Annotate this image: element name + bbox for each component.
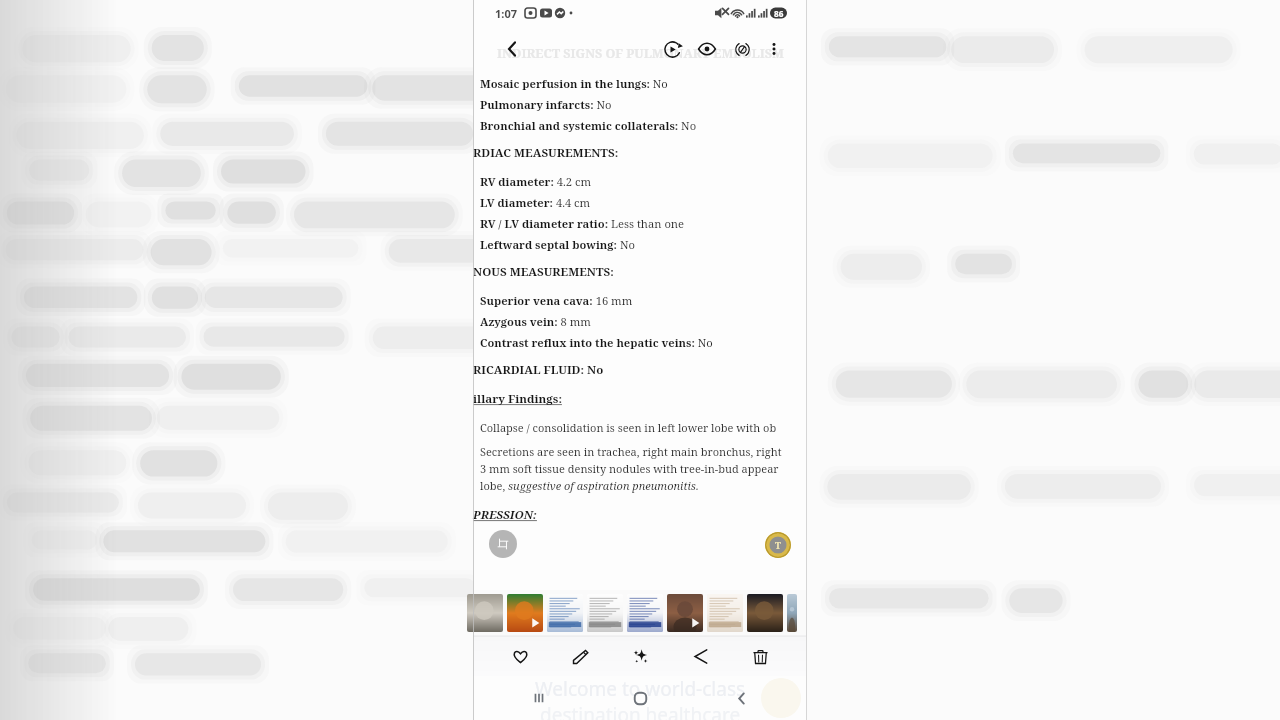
staticText: 3 mm soft tissue density nodules with tr… bbox=[480, 461, 779, 476]
staticText: lobe, suggestive of aspiration pneumonit… bbox=[480, 478, 699, 493]
staticText: LV diameter: 4.4 cm bbox=[480, 195, 591, 210]
button[interactable] bbox=[787, 594, 797, 632]
staticText: T bbox=[775, 539, 781, 551]
staticText: Superior vena cava: 16 mm bbox=[480, 293, 633, 308]
staticText: illary Findings: bbox=[473, 391, 562, 407]
button[interactable]: Lens bbox=[726, 33, 758, 65]
staticText: RV diameter: 4.2 cm bbox=[480, 174, 592, 189]
button[interactable]: Back bbox=[495, 32, 529, 66]
button[interactable]: Crop bbox=[489, 530, 517, 558]
staticText: destination healthcare bbox=[540, 702, 741, 720]
button[interactable]: Delete bbox=[741, 637, 779, 675]
button[interactable]: Back bbox=[721, 678, 761, 718]
staticText: Mosaic perfusion in the lungs: No bbox=[480, 76, 668, 91]
button[interactable] bbox=[747, 594, 783, 632]
button[interactable] bbox=[467, 594, 503, 632]
staticText: RICARDIAL FLUID: No bbox=[473, 362, 604, 378]
button[interactable]: Favorite bbox=[501, 637, 539, 675]
staticText: Secretions are seen in trachea, right ma… bbox=[480, 444, 782, 459]
staticText: Bronchial and systemic collaterals: No bbox=[480, 118, 697, 133]
staticText: Welcome to world-class bbox=[535, 676, 746, 702]
staticText: RV / LV diameter ratio: Less than one bbox=[480, 216, 685, 231]
button[interactable] bbox=[587, 594, 623, 632]
staticText: Leftward septal bowing: No bbox=[480, 237, 635, 252]
button[interactable]: Enhance with AI bbox=[621, 637, 659, 675]
button[interactable]: Slideshow bbox=[656, 33, 688, 65]
button[interactable] bbox=[667, 594, 703, 632]
staticText: NOUS MEASUREMENTS: bbox=[473, 264, 614, 280]
button[interactable]: Home bbox=[620, 678, 660, 718]
staticText: INDIRECT SIGNS OF PULMONARY EMBOLISM bbox=[497, 45, 784, 62]
staticText: PRESSION: bbox=[473, 507, 537, 523]
staticText: RDIAC MEASUREMENTS: bbox=[473, 145, 619, 161]
button[interactable] bbox=[547, 594, 583, 632]
button[interactable]: Recent apps bbox=[519, 678, 559, 718]
staticText: Contrast reflux into the hepatic veins: … bbox=[480, 335, 713, 350]
button[interactable] bbox=[627, 594, 663, 632]
button[interactable]: More options bbox=[759, 34, 789, 64]
button[interactable]: Edit bbox=[561, 637, 599, 675]
staticText: Collapse / consolidation is seen in left… bbox=[480, 420, 777, 435]
staticText: Pulmonary infarcts: No bbox=[480, 97, 612, 112]
staticText: 86 bbox=[774, 8, 784, 19]
staticText: 1:07 bbox=[495, 6, 517, 21]
staticText: Azygous vein: 8 mm bbox=[480, 314, 591, 329]
button[interactable] bbox=[707, 594, 743, 632]
button[interactable]: View details bbox=[691, 33, 723, 65]
button[interactable]: Share bbox=[681, 637, 719, 675]
button[interactable] bbox=[507, 594, 543, 632]
